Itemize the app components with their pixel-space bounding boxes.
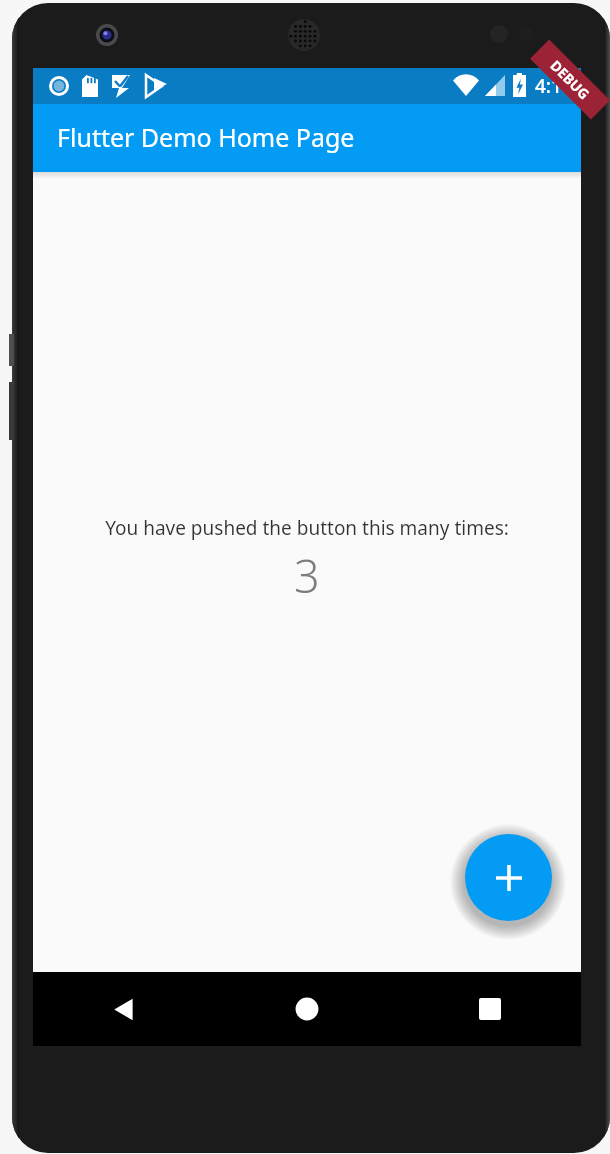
button[interactable]: Home (215, 972, 398, 1046)
staticText: Flutter Demo Home Page (57, 120, 355, 154)
staticText: 4:16 (535, 73, 573, 99)
button[interactable]: Increment counter (465, 834, 552, 921)
button[interactable]: Recent apps (398, 972, 581, 1046)
button[interactable]: Back (33, 972, 215, 1046)
staticText: You have pushed the button this many tim… (105, 515, 509, 541)
staticText: 3 (294, 545, 320, 606)
staticText: DEBUG (546, 56, 594, 104)
